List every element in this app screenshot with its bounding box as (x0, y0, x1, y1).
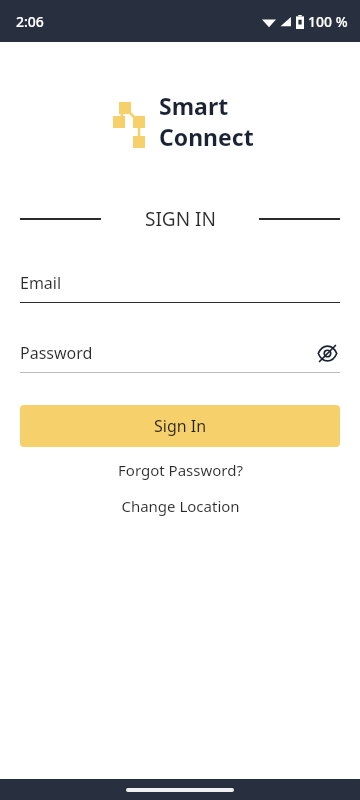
button[interactable]: Email (20, 270, 340, 296)
staticText: Change Location (121, 496, 240, 516)
staticText: SIGN IN (145, 206, 216, 232)
staticText: Email (20, 272, 62, 294)
button[interactable]: Change Location (0, 495, 360, 517)
staticText: 100 % (308, 12, 348, 31)
button[interactable]: Forgot Password? (0, 459, 360, 481)
staticText: Forgot Password? (118, 460, 243, 480)
staticText: 2:06 (16, 12, 44, 31)
button[interactable]: Show password (314, 340, 340, 366)
staticText: Sign In (154, 415, 207, 437)
staticText: Smart (159, 90, 229, 121)
staticText: Connect (159, 121, 254, 152)
button[interactable]: Password (20, 340, 340, 366)
button[interactable]: Sign In (20, 405, 340, 447)
staticText: Password (20, 342, 93, 364)
